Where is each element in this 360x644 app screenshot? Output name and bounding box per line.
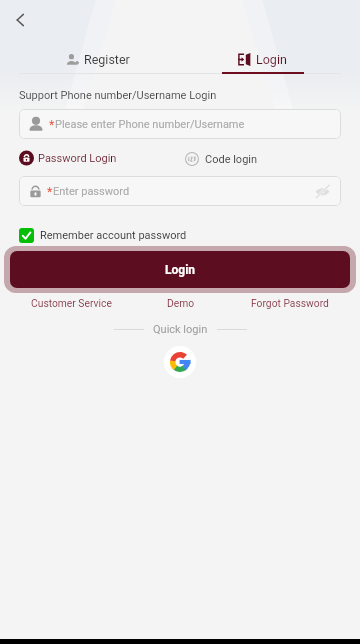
staticText: Forgot Password [251, 297, 329, 309]
staticText: Login [165, 263, 196, 277]
staticText: Please enter Phone number/Username [55, 118, 245, 131]
button[interactable]: Code login [185, 151, 258, 167]
button[interactable]: Forgot Password [235, 295, 344, 310]
button[interactable]: Password Login [19, 151, 117, 165]
button[interactable]: Sign in with Google [164, 346, 196, 378]
staticText: Login [256, 52, 287, 67]
staticText: Customer Service [31, 297, 112, 309]
button[interactable]: Register [17, 44, 178, 75]
button[interactable]: Back [3, 3, 37, 37]
staticText: Demo [167, 297, 195, 309]
button[interactable]: Demo [126, 295, 235, 310]
staticText: Enter password [53, 185, 130, 198]
staticText: Password Login [38, 152, 117, 165]
staticText: * [47, 184, 53, 199]
button[interactable]: Customer Service [16, 295, 126, 310]
staticText: Support Phone number/Username Login [19, 89, 217, 102]
button[interactable]: Show password [311, 180, 333, 202]
staticText: Code login [205, 153, 258, 166]
button[interactable]: Login [182, 44, 343, 75]
button[interactable]: Login [10, 251, 350, 288]
staticText: Register [84, 52, 130, 67]
staticText: Quick login [153, 323, 208, 336]
staticText: * [49, 117, 55, 132]
button[interactable]: * [19, 109, 341, 139]
staticText: Remember account password [40, 229, 187, 242]
button[interactable]: Remember account password [19, 227, 187, 243]
button[interactable]: * [19, 176, 341, 206]
